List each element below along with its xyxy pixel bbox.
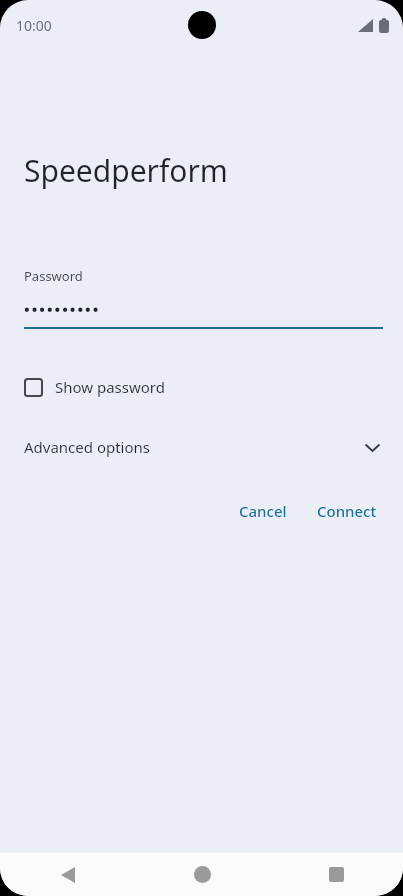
staticText: Advanced options	[24, 437, 151, 457]
button[interactable]: Advanced options	[0, 431, 403, 463]
staticText: 10:00	[16, 16, 52, 35]
staticText: Show password	[55, 377, 165, 397]
staticText: Speedperform	[24, 150, 228, 191]
button[interactable]: ••••••••••	[24, 299, 383, 329]
button[interactable]: Recent apps	[269, 853, 403, 896]
button[interactable]: Home	[135, 853, 269, 896]
staticText: Connect	[317, 501, 377, 521]
staticText: Password	[24, 267, 83, 285]
button[interactable]: Show password	[22, 373, 167, 401]
button[interactable]: Cancel	[231, 495, 295, 527]
staticText: Cancel	[239, 501, 287, 521]
staticText: ••••••••••	[24, 299, 101, 319]
button[interactable]: Back	[0, 853, 135, 896]
button[interactable]: Connect	[309, 495, 385, 527]
